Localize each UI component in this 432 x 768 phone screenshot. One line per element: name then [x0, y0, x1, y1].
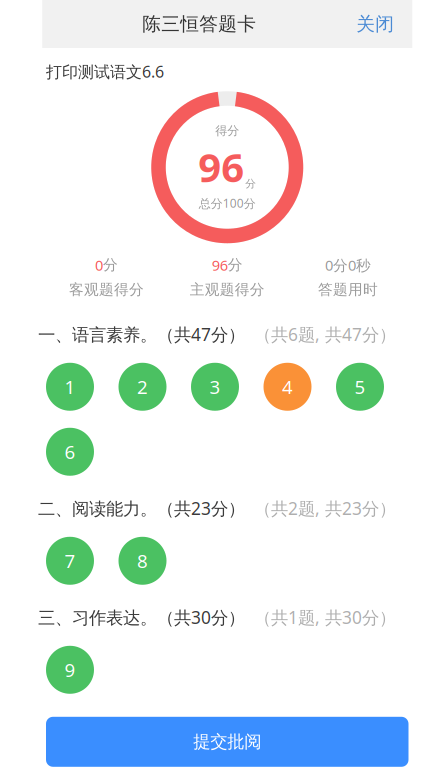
staticText: 客观题得分	[69, 281, 144, 299]
staticText: 答题用时	[318, 281, 378, 299]
staticText: 7	[64, 548, 75, 573]
staticText: 关闭	[356, 12, 394, 35]
staticText: （共2题, 共23分）	[254, 497, 396, 520]
button[interactable]: 7	[46, 537, 94, 585]
button[interactable]: 3	[191, 363, 239, 411]
staticText: 4	[282, 374, 293, 399]
staticText: 96	[198, 140, 244, 193]
button[interactable]: 8	[118, 537, 166, 585]
staticText: 分	[245, 177, 256, 190]
button[interactable]: 9	[46, 646, 94, 694]
staticText: 3	[209, 374, 220, 399]
staticText: 96	[212, 255, 228, 275]
staticText: 得分	[215, 123, 239, 138]
staticText: （共1题, 共30分）	[254, 606, 396, 629]
staticText: 2	[137, 374, 148, 399]
staticText: 一、语言素养。（共47分）	[38, 323, 245, 346]
staticText: （共6题, 共47分）	[254, 323, 396, 346]
button[interactable]: 5	[336, 363, 384, 411]
staticText: 0分0秒	[325, 255, 371, 275]
staticText: 分	[228, 256, 243, 274]
staticText: 二、阅读能力。（共23分）	[38, 497, 245, 520]
staticText: 分	[103, 256, 118, 274]
staticText: 1	[64, 374, 75, 399]
staticText: 三、习作表达。（共30分）	[38, 606, 245, 629]
button[interactable]: 提交批阅	[46, 717, 408, 767]
staticText: 提交批阅	[193, 731, 261, 752]
staticText: 主观题得分	[190, 281, 265, 299]
button[interactable]: 关闭	[356, 12, 412, 35]
staticText: 总分100分	[199, 195, 256, 211]
staticText: 陈三恒答题卡	[142, 12, 256, 35]
staticText: 打印测试语文6.6	[46, 61, 164, 82]
staticText: 9	[64, 657, 75, 682]
button[interactable]: 1	[46, 363, 94, 411]
staticText: 6	[64, 439, 75, 464]
staticText: 0	[95, 255, 103, 275]
staticText: 5	[354, 374, 365, 399]
button[interactable]: 2	[118, 363, 166, 411]
staticText: 8	[137, 548, 148, 573]
button[interactable]: 6	[46, 428, 94, 476]
button[interactable]: 4	[263, 363, 311, 411]
